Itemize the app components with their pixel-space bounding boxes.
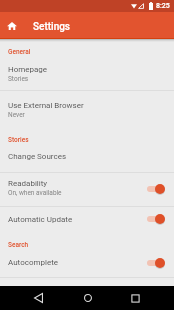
staticText: Stories (8, 136, 29, 144)
staticText: Change Sources (8, 152, 67, 161)
button[interactable]: Recent apps (123, 286, 148, 310)
staticText: Readability (8, 179, 48, 188)
button[interactable]: Homepage (0, 58, 174, 90)
staticText: Automatic Update (8, 215, 73, 224)
staticText: Stories (8, 75, 29, 83)
staticText: Use External Browser (8, 101, 84, 110)
button[interactable]: Change Sources (0, 146, 174, 172)
staticText: 8:25 (156, 2, 170, 10)
staticText: Homepage (8, 65, 48, 74)
button[interactable]: Back (26, 286, 51, 310)
staticText: General (8, 48, 31, 56)
staticText: On, when available (8, 189, 62, 197)
button[interactable]: Readability (0, 173, 174, 206)
staticText: Autocomplete (8, 258, 58, 267)
staticText: Never (8, 111, 25, 119)
button[interactable]: Autocomplete (0, 251, 174, 277)
button[interactable]: Home (0, 13, 24, 37)
button[interactable]: Automatic Update (0, 207, 174, 235)
staticText: Settings (33, 21, 71, 33)
button[interactable]: Use External Browser (0, 91, 174, 136)
button[interactable]: Home (75, 286, 100, 310)
staticText: Search (8, 241, 29, 249)
